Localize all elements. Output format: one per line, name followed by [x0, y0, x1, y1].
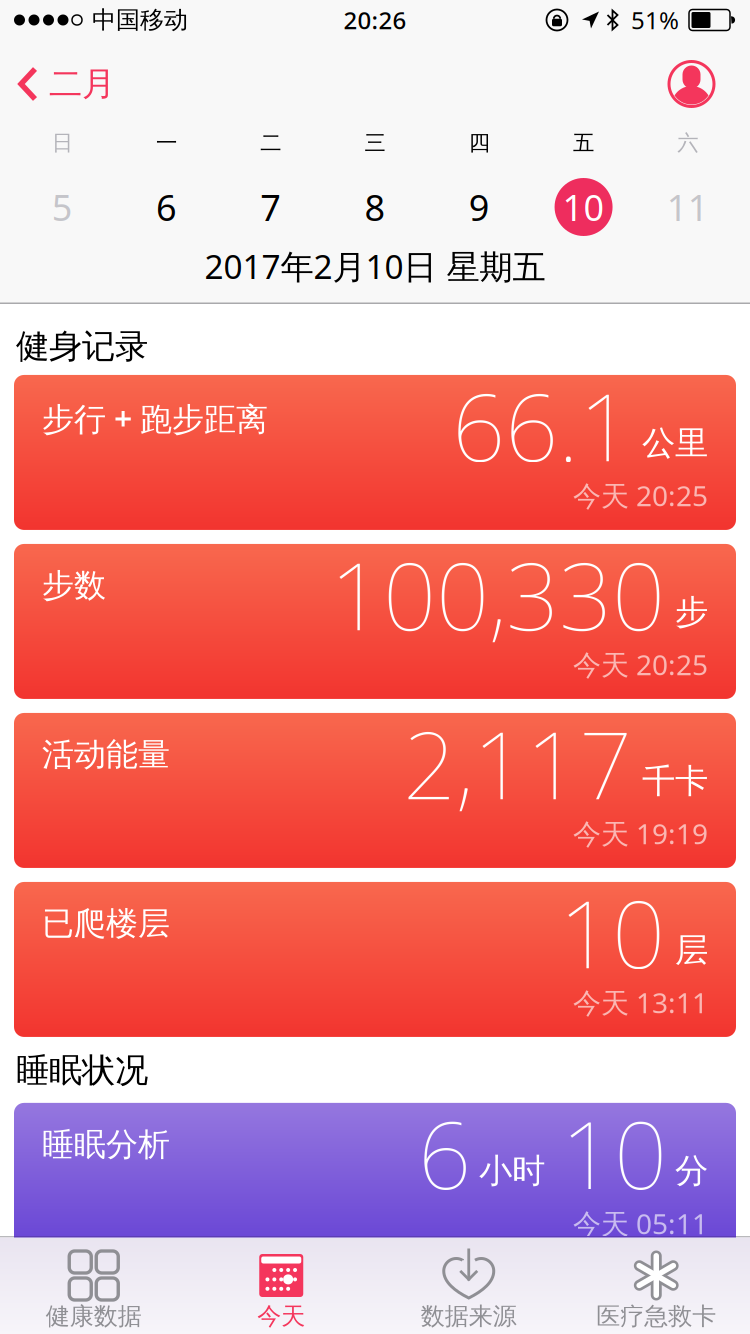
staticText: 6	[418, 1091, 471, 1215]
button[interactable]: 8	[323, 176, 427, 238]
button[interactable]: 6	[114, 176, 219, 238]
staticText: 今天 20:25	[573, 646, 708, 683]
button[interactable]: 5	[10, 176, 114, 238]
staticText: 7	[260, 183, 281, 231]
button[interactable]: 步数	[14, 544, 736, 699]
staticText: 今天 20:25	[573, 477, 708, 514]
button[interactable]: 睡眠分析	[14, 1103, 736, 1258]
staticText: 健身记录	[16, 326, 148, 367]
staticText: 100,330	[330, 532, 665, 656]
staticText: 已爬楼层	[42, 904, 170, 943]
staticText: 10	[559, 870, 665, 994]
staticText: 中国移动	[92, 5, 188, 35]
staticText: 10	[561, 1091, 667, 1215]
staticText: 步	[675, 592, 708, 632]
button[interactable]: 返回二月	[0, 63, 115, 104]
staticText: 医疗急救卡	[596, 1301, 716, 1331]
staticText: 步行 + 跑步距离	[42, 397, 268, 439]
staticText: 20:26	[343, 4, 406, 36]
button[interactable]: 健康数据	[0, 1250, 187, 1331]
staticText: 日	[52, 130, 73, 156]
button[interactable]: 步行 + 跑步距离	[14, 375, 736, 530]
staticText: 小时	[479, 1150, 545, 1191]
staticText: 数据来源	[421, 1301, 517, 1331]
staticText: 9	[469, 183, 490, 231]
button[interactable]: 数据来源	[375, 1250, 562, 1331]
staticText: 健康数据	[46, 1301, 142, 1331]
staticText: 2017年2月10日 星期五	[204, 244, 545, 288]
button[interactable]: 医疗急救卡	[562, 1250, 750, 1331]
staticText: 二月	[49, 63, 115, 104]
staticText: 活动能量	[42, 735, 170, 774]
button[interactable]: 已爬楼层	[14, 882, 736, 1037]
staticText: 今天 19:19	[573, 815, 708, 852]
staticText: 睡眠状况	[16, 1050, 148, 1091]
staticText: 千卡	[642, 761, 708, 801]
staticText: 2,117	[403, 701, 632, 825]
staticText: 6	[156, 183, 177, 231]
button[interactable]: 7	[219, 176, 323, 238]
staticText: 步数	[42, 566, 106, 605]
staticText: 二	[260, 130, 281, 156]
staticText: 8	[364, 183, 385, 231]
staticText: 66.1	[452, 363, 632, 487]
staticText: 10	[563, 183, 605, 231]
staticText: 分	[675, 1150, 708, 1191]
staticText: 五	[573, 130, 594, 156]
staticText: 三	[364, 130, 385, 156]
button[interactable]: 今天	[187, 1250, 375, 1331]
staticText: 51%	[631, 4, 679, 36]
staticText: 今天 05:11	[573, 1205, 708, 1242]
staticText: 11	[667, 183, 709, 231]
staticText: 睡眠分析	[42, 1125, 170, 1164]
staticText: 四	[469, 130, 490, 156]
staticText: 层	[675, 930, 708, 970]
button[interactable]: 11	[636, 176, 740, 238]
staticText: 公里	[642, 423, 708, 463]
staticText: 六	[677, 130, 698, 156]
button[interactable]: 10	[531, 176, 636, 238]
staticText: 一	[156, 130, 177, 156]
button[interactable]: 个人资料	[669, 61, 750, 106]
button[interactable]: 9	[427, 176, 531, 238]
button[interactable]: 活动能量	[14, 713, 736, 868]
staticText: 今天 13:11	[573, 984, 708, 1021]
staticText: 今天	[257, 1301, 305, 1331]
staticText: 5	[52, 183, 73, 231]
